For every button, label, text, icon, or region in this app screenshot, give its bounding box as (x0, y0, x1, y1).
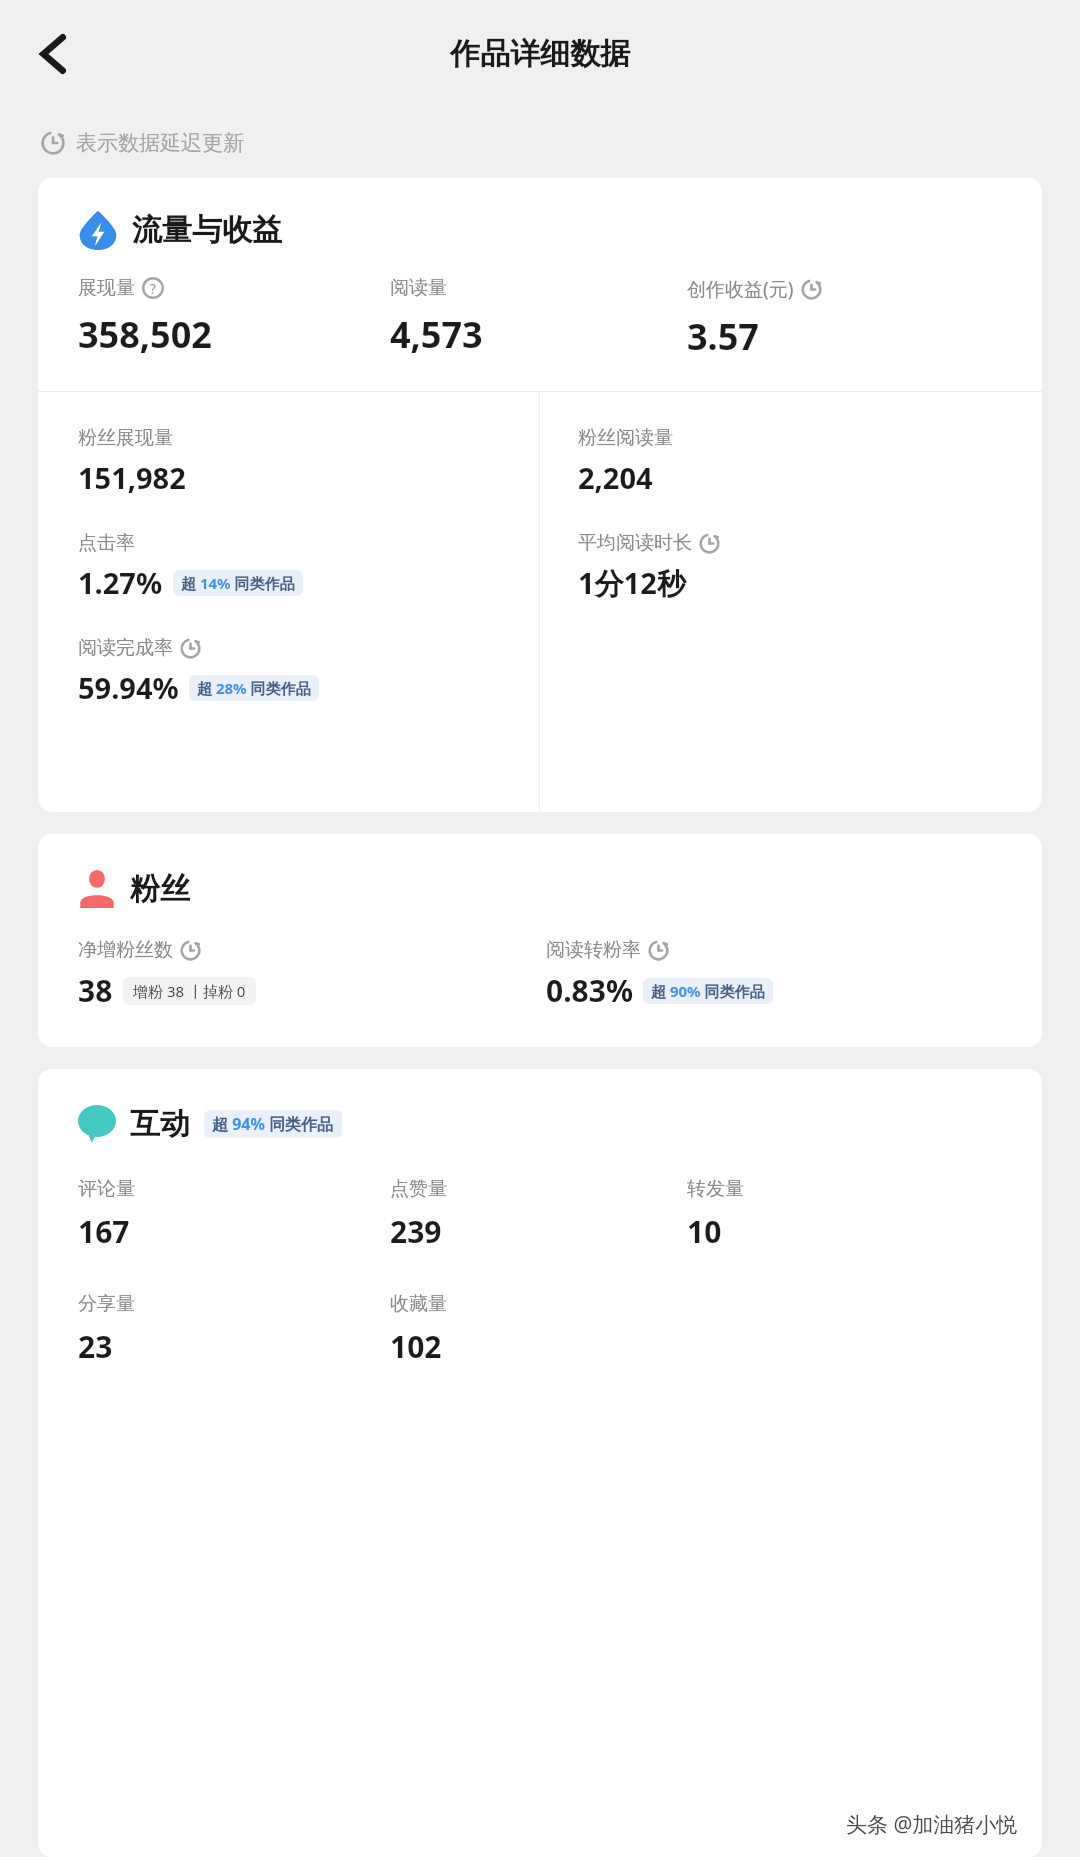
button[interactable]: 阅读转粉率 (546, 938, 1014, 1011)
staticText: 创作收益(元) (687, 276, 794, 302)
staticText: 净增粉丝数 (78, 938, 173, 962)
staticText: 1.27% (78, 563, 163, 602)
button[interactable]: 超 28% 同类作品 (189, 675, 319, 701)
staticText: 互动 (130, 1105, 190, 1143)
staticText: 239 (390, 1211, 442, 1252)
button[interactable]: 粉丝 (78, 870, 190, 908)
button[interactable]: 返回 (22, 22, 86, 86)
staticText: 平均阅读时长 (578, 531, 692, 555)
button[interactable]: 超 90% 同类作品 (643, 978, 773, 1004)
staticText: 23 (78, 1326, 113, 1367)
button[interactable]: 展现量 (78, 276, 390, 359)
staticText: 评论量 (78, 1177, 135, 1201)
button[interactable]: 净增粉丝数 (78, 938, 546, 1011)
staticText: 头条 @加油猪小悦 (846, 1810, 1018, 1839)
button[interactable]: 增粉 38 丨掉粉 0 (123, 977, 256, 1005)
staticText: 阅读完成率 (78, 636, 173, 660)
staticText: 粉丝 (130, 870, 190, 908)
button[interactable]: 粉丝展现量 (78, 426, 519, 497)
button[interactable]: 点击率 (78, 531, 519, 602)
button[interactable]: 阅读完成率 (78, 636, 519, 707)
staticText: 10 (687, 1211, 722, 1252)
button[interactable]: 平均阅读时长 (578, 531, 1022, 603)
staticText: 167 (78, 1211, 130, 1252)
staticText: 0.83% (546, 970, 633, 1011)
staticText: 流量与收益 (132, 211, 282, 249)
button[interactable]: 超 94% 同类作品 (204, 1110, 342, 1138)
staticText: 超 28% 同类作品 (197, 678, 311, 698)
button[interactable]: 流量与收益 (78, 210, 282, 250)
button[interactable]: 粉丝阅读量 (578, 426, 1022, 497)
staticText: 151,982 (78, 458, 186, 497)
staticText: 38 (78, 970, 113, 1011)
staticText: 3.57 (687, 312, 759, 361)
staticText: 粉丝展现量 (78, 426, 173, 450)
button[interactable]: 超 14% 同类作品 (173, 570, 303, 596)
staticText: 分享量 (78, 1292, 135, 1316)
staticText: 1分12秒 (578, 563, 686, 603)
staticText: 表示数据延迟更新 (76, 130, 244, 156)
staticText: 2,204 (578, 458, 653, 497)
button[interactable]: 互动 (78, 1105, 342, 1143)
button[interactable]: 转发量 (687, 1177, 1014, 1252)
staticText: 超 90% 同类作品 (651, 981, 765, 1001)
staticText: 点击率 (78, 531, 135, 555)
staticText: 收藏量 (390, 1292, 447, 1316)
button[interactable]: 分享量 (78, 1292, 390, 1367)
staticText: 102 (390, 1326, 442, 1367)
staticText: 4,573 (390, 310, 483, 359)
staticText: 展现量 (78, 276, 135, 300)
staticText: 粉丝阅读量 (578, 426, 673, 450)
staticText: 增粉 38 丨掉粉 0 (133, 981, 246, 1001)
button[interactable]: 阅读量 (390, 276, 687, 359)
staticText: 点赞量 (390, 1177, 447, 1201)
staticText: ? (150, 279, 156, 298)
staticText: 转发量 (687, 1177, 744, 1201)
staticText: 超 94% 同类作品 (212, 1113, 334, 1135)
staticText: 作品详细数据 (450, 35, 630, 73)
button[interactable]: 创作收益(元) (687, 276, 1014, 361)
button[interactable]: 收藏量 (390, 1292, 687, 1367)
button[interactable]: 评论量 (78, 1177, 390, 1252)
staticText: 超 14% 同类作品 (181, 573, 295, 593)
button[interactable]: 点赞量 (390, 1177, 687, 1252)
staticText: 阅读转粉率 (546, 938, 641, 962)
staticText: 阅读量 (390, 276, 447, 300)
staticText: 59.94% (78, 668, 179, 707)
staticText: 358,502 (78, 310, 212, 359)
